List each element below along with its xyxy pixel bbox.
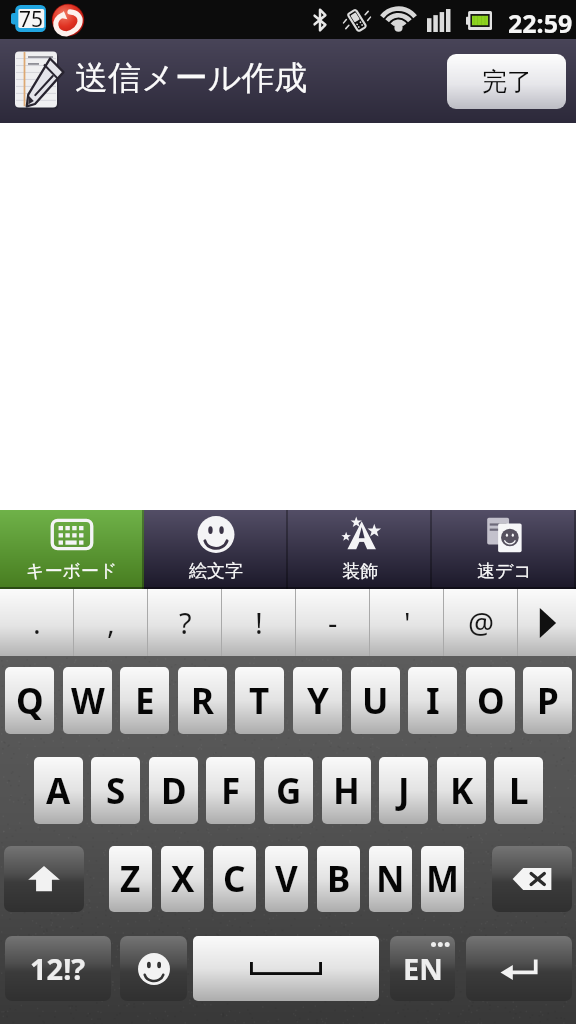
staticText: 装飾 (342, 560, 378, 583)
other: Compose mail (14, 50, 64, 109)
button[interactable]: V (265, 846, 308, 912)
staticText: M (426, 855, 460, 903)
staticText: B (327, 855, 351, 903)
staticText: 75 (19, 5, 44, 32)
button[interactable]: , (74, 589, 148, 656)
button[interactable]: Space (193, 936, 379, 1001)
button[interactable]: X (161, 846, 204, 912)
button[interactable]: T (235, 667, 284, 734)
button[interactable]: P (523, 667, 572, 734)
staticText: G (276, 767, 302, 815)
staticText: キーボード (26, 560, 118, 583)
button[interactable]: D (149, 757, 198, 824)
staticText: V (275, 855, 298, 903)
button[interactable]: H (322, 757, 371, 824)
staticText: Y (307, 677, 329, 725)
button[interactable]: I (408, 667, 457, 734)
staticText: A (46, 767, 71, 815)
staticText: @ (468, 603, 495, 642)
staticText: ' (404, 603, 411, 642)
button[interactable]: 絵文字 (144, 510, 288, 589)
staticText: H (333, 767, 360, 815)
staticText: Z (120, 855, 141, 903)
button[interactable]: S (91, 757, 140, 824)
button[interactable]: M (421, 846, 464, 912)
button[interactable]: Y (293, 667, 342, 734)
button[interactable]: - (296, 589, 370, 656)
button[interactable]: W (63, 667, 112, 734)
staticText: J (398, 767, 410, 815)
staticText: U (362, 677, 389, 725)
button[interactable]: E (120, 667, 169, 734)
button[interactable]: L (494, 757, 543, 824)
staticText: X (171, 855, 195, 903)
staticText: L (509, 767, 529, 815)
staticText: T (249, 677, 270, 725)
staticText: , (107, 603, 115, 642)
button[interactable]: R (178, 667, 227, 734)
staticText: ! (255, 603, 263, 642)
button[interactable]: Backspace (492, 846, 572, 912)
button[interactable]: Q (5, 667, 54, 734)
button[interactable]: J (379, 757, 428, 824)
button[interactable]: ' (370, 589, 444, 656)
button[interactable]: EN (390, 936, 455, 1001)
button[interactable]: U (351, 667, 400, 734)
button[interactable]: O (466, 667, 515, 734)
button[interactable]: @ (444, 589, 518, 656)
button[interactable]: 速デコ (432, 510, 576, 589)
staticText: D (161, 767, 187, 815)
staticText: ? (179, 603, 192, 642)
staticText: R (191, 677, 214, 725)
button[interactable]: K (437, 757, 486, 824)
button[interactable]: ! (222, 589, 296, 656)
staticText: . (33, 603, 41, 642)
button[interactable]: G (264, 757, 313, 824)
staticText: P (537, 677, 559, 725)
staticText: Q (16, 677, 44, 725)
button[interactable]: 完了 (447, 54, 566, 109)
staticText: E (135, 677, 155, 725)
button[interactable]: Z (109, 846, 152, 912)
button[interactable]: Shift (4, 846, 84, 912)
staticText: 22:59 (508, 6, 573, 40)
button[interactable]: B (317, 846, 360, 912)
button[interactable]: . (0, 589, 74, 656)
staticText: 12!? (30, 949, 86, 988)
button[interactable]: Next candidates (518, 589, 576, 656)
staticText: F (221, 767, 241, 815)
staticText: W (71, 677, 105, 725)
staticText: 送信メール作成 (75, 57, 308, 99)
button[interactable]: キーボード (0, 510, 144, 589)
button[interactable]: N (369, 846, 412, 912)
button[interactable]: A (34, 757, 83, 824)
staticText: I (426, 677, 440, 725)
staticText: C (223, 855, 246, 903)
button[interactable]: C (213, 846, 256, 912)
button[interactable]: 装飾 (288, 510, 432, 589)
staticText: 絵文字 (189, 560, 243, 583)
button[interactable]: ? (148, 589, 222, 656)
button[interactable]: 12!? (5, 936, 111, 1001)
button[interactable]: F (206, 757, 255, 824)
staticText: - (328, 603, 338, 642)
staticText: 速デコ (477, 560, 532, 583)
button[interactable]: Enter (466, 936, 572, 1001)
button[interactable]: Emoji (120, 936, 187, 1001)
staticText: O (477, 677, 505, 725)
staticText: 完了 (482, 66, 532, 97)
staticText: S (106, 767, 126, 815)
staticText: EN (403, 949, 443, 988)
staticText: N (376, 855, 405, 903)
staticText: K (450, 767, 474, 815)
